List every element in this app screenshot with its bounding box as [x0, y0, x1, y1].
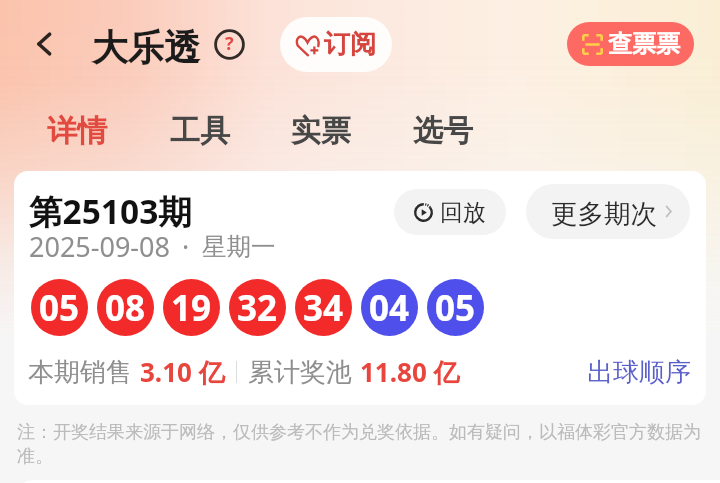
- staticText: 04: [369, 284, 410, 332]
- staticText: 05: [435, 284, 476, 332]
- staticText: 05: [39, 284, 80, 332]
- staticText: 累计奖池: [248, 356, 352, 389]
- staticText: 19: [171, 284, 212, 332]
- button[interactable]: 选号: [413, 112, 473, 150]
- staticText: 订阅: [324, 28, 376, 61]
- staticText: 本期销售: [28, 356, 132, 389]
- staticText: ·: [182, 228, 190, 265]
- staticText: 选号: [413, 112, 473, 150]
- staticText: 3.10 亿: [140, 354, 225, 390]
- staticText: 详情: [47, 112, 107, 150]
- button[interactable]: 出球顺序: [587, 356, 691, 389]
- button[interactable]: 详情: [47, 112, 107, 150]
- staticText: 出球顺序: [587, 356, 691, 389]
- button[interactable]: 更多期次: [526, 184, 690, 239]
- button[interactable]: 回放: [394, 189, 506, 235]
- button[interactable]: 实票: [291, 112, 351, 150]
- button[interactable]: 工具: [170, 112, 230, 150]
- staticText: 08: [105, 284, 146, 332]
- staticText: 工具: [170, 112, 230, 150]
- staticText: 查票票: [608, 29, 680, 59]
- staticText: 34: [303, 284, 344, 332]
- staticText: 星期一: [202, 231, 276, 262]
- staticText: 第25103期: [29, 188, 192, 234]
- staticText: ?: [225, 31, 234, 56]
- staticText: 2025-09-08: [29, 228, 170, 265]
- staticText: 实票: [291, 112, 351, 150]
- staticText: 11.80 亿: [360, 354, 460, 390]
- staticText: 回放: [440, 198, 486, 227]
- button[interactable]: Help: [213, 28, 245, 60]
- staticText: 32: [237, 284, 278, 332]
- button[interactable]: 查票票: [567, 22, 694, 66]
- button[interactable]: Back: [24, 24, 64, 64]
- staticText: 大乐透: [92, 25, 200, 70]
- staticText: 注：开奖结果来源于网络，仅供参考不作为兑奖依据。如有疑问，以福体彩官方数据为准。: [17, 421, 703, 467]
- staticText: 更多期次: [551, 197, 657, 230]
- button[interactable]: 订阅: [280, 17, 392, 72]
